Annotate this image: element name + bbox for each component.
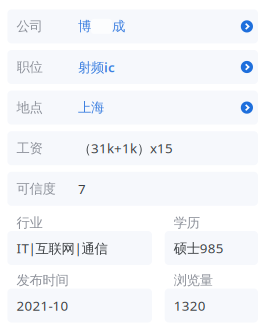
staticText: 学历	[174, 215, 200, 231]
staticText: 职位	[16, 59, 42, 75]
staticText: 博	[78, 18, 91, 35]
staticText: 成	[112, 18, 125, 35]
staticText: 公司	[16, 18, 42, 35]
staticText: 7	[78, 180, 86, 198]
staticText: 行业	[16, 215, 42, 231]
staticText: 可信度	[16, 181, 55, 197]
button[interactable]: 可信度	[0, 172, 258, 206]
staticText: （31k+1k）x15	[78, 139, 173, 157]
staticText: IT|互联网|通信	[16, 239, 107, 257]
staticText: 上海	[78, 99, 104, 116]
button[interactable]: 地点	[0, 91, 258, 125]
button[interactable]: 职位	[0, 50, 258, 84]
staticText: 硕士985	[174, 239, 224, 257]
staticText: 发布时间	[16, 272, 68, 288]
staticText: 地点	[16, 99, 42, 116]
button[interactable]: 公司	[0, 9, 258, 43]
staticText: 2021-10	[16, 297, 68, 314]
staticText: 浏览量	[174, 272, 213, 288]
staticText: 工资	[16, 140, 42, 156]
staticText: 射频ic	[78, 58, 115, 76]
staticText: 1320	[174, 297, 206, 314]
button[interactable]: 工资	[0, 131, 258, 165]
